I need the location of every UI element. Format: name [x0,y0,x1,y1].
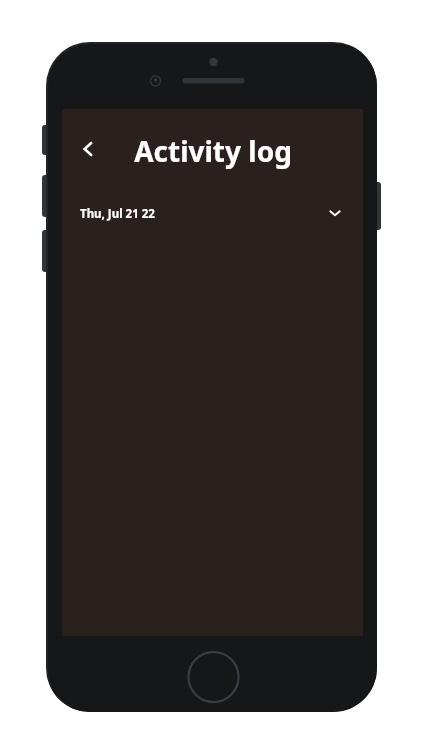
staticText: Activity log [134,132,292,170]
button[interactable]: Thu, Jul 21 22 [62,191,363,235]
staticText: Thu, Jul 21 22 [80,206,155,222]
other: Expand [323,201,347,225]
button[interactable]: Back [66,127,110,171]
